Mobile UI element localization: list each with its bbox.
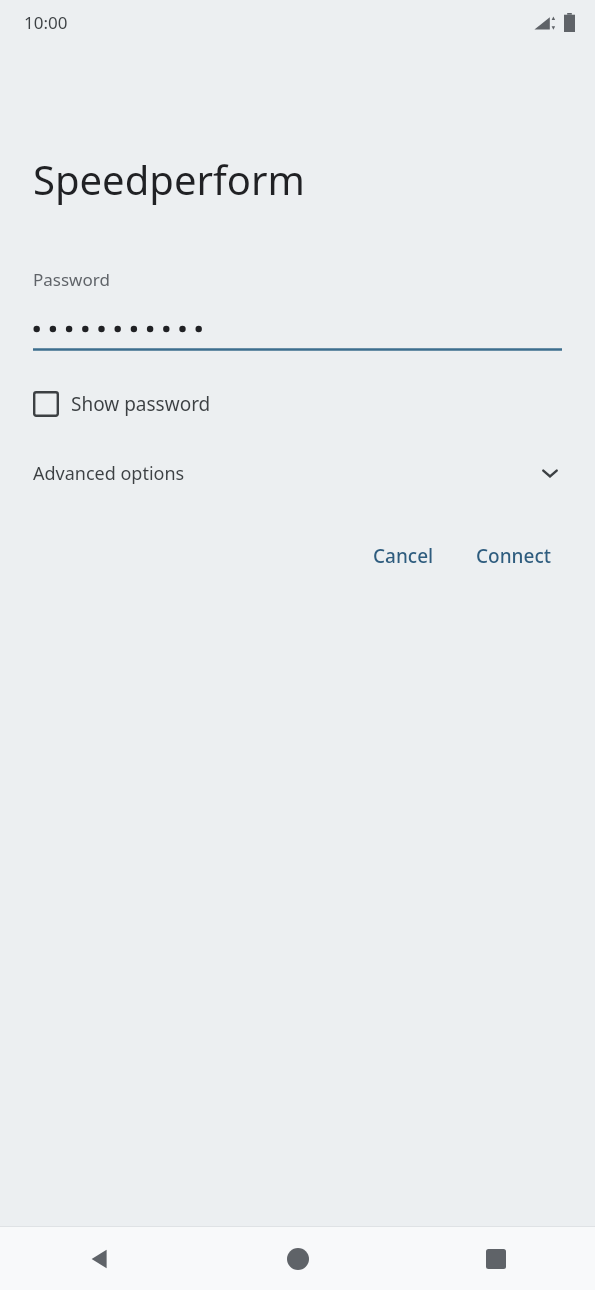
- staticText: Cancel: [373, 543, 434, 569]
- staticText: 10:00: [24, 11, 68, 34]
- button[interactable]: Connect: [466, 535, 562, 577]
- button[interactable]: Recent apps: [397, 1227, 595, 1290]
- staticText: Show password: [71, 391, 211, 417]
- other: Expand advanced options: [538, 461, 562, 485]
- button[interactable]: Back: [0, 1227, 199, 1290]
- button[interactable]: [33, 307, 562, 351]
- button[interactable]: Cancel: [363, 535, 444, 577]
- button[interactable]: Home: [199, 1227, 397, 1290]
- button[interactable]: Advanced options: [33, 453, 562, 493]
- staticText: Speedperform: [33, 152, 305, 206]
- staticText: Advanced options: [33, 461, 185, 486]
- staticText: Password: [33, 268, 110, 291]
- staticText: Connect: [476, 543, 552, 569]
- button[interactable]: Show password: [33, 391, 562, 417]
